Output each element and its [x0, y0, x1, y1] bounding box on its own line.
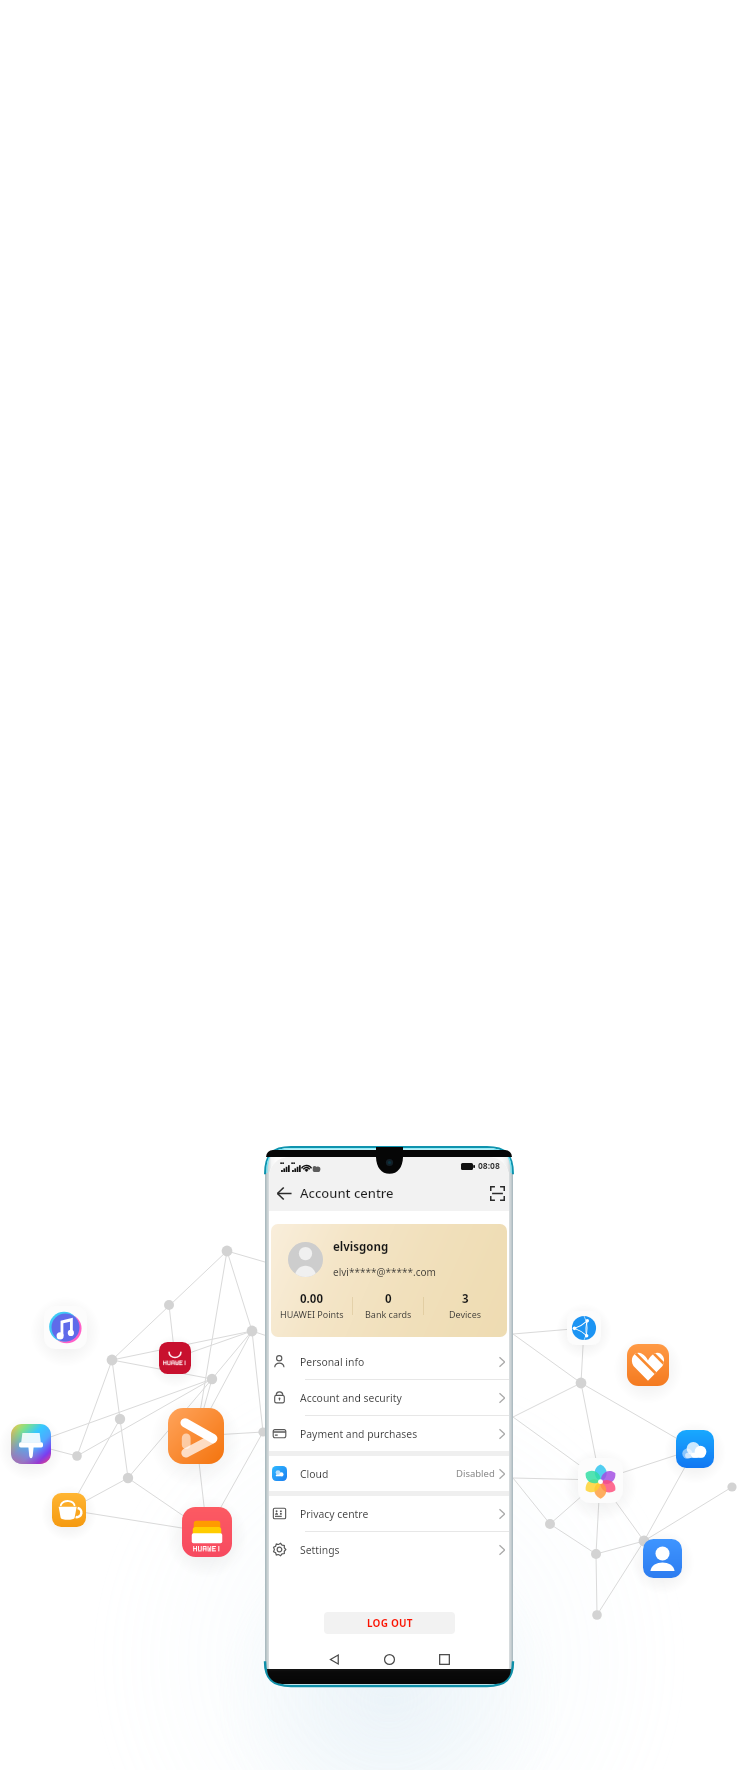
staticText: Bank cards: [365, 1308, 412, 1320]
other: HiCare: [52, 1493, 86, 1527]
button[interactable]: Browser: [567, 1311, 601, 1345]
other: Browser: [567, 1311, 601, 1345]
button[interactable]: 0: [353, 1291, 423, 1320]
button[interactable]: elvisgong: [271, 1224, 507, 1337]
other: Music: [44, 1306, 87, 1349]
staticText: Account centre: [300, 1184, 394, 1202]
button[interactable]: Cloud: [676, 1430, 714, 1468]
staticText: Payment and purchases: [300, 1427, 418, 1441]
staticText: Settings: [300, 1543, 340, 1557]
staticText: Account and security: [300, 1391, 402, 1405]
button[interactable]: Privacy centre: [269, 1496, 509, 1531]
other: Wallet: [182, 1507, 232, 1557]
other: Gallery: [578, 1458, 623, 1503]
staticText: Devices: [449, 1308, 482, 1320]
other: Themes: [11, 1424, 51, 1464]
button[interactable]: 0.00: [271, 1291, 352, 1320]
staticText: 08:08: [478, 1160, 500, 1172]
other: Health: [627, 1344, 669, 1386]
other: Cloud: [676, 1430, 714, 1468]
button[interactable]: Account and security: [269, 1380, 509, 1415]
button[interactable]: Gallery: [578, 1458, 623, 1503]
button[interactable]: HiCare: [52, 1493, 86, 1527]
staticText: elvi*****@*****.com: [333, 1265, 436, 1279]
button[interactable]: Back: [269, 1175, 300, 1211]
button[interactable]: Home: [374, 1648, 404, 1670]
other: Contacts: [643, 1539, 682, 1578]
button[interactable]: Recent apps: [429, 1648, 459, 1670]
staticText: 0.00: [300, 1291, 323, 1307]
button[interactable]: 3: [424, 1291, 507, 1320]
staticText: HUAWEI Points: [280, 1308, 344, 1320]
other: AppGallery: [159, 1342, 191, 1374]
button[interactable]: Themes: [11, 1424, 51, 1464]
staticText: elvisgong: [333, 1239, 389, 1255]
staticText: Cloud: [300, 1467, 329, 1481]
button[interactable]: Settings: [269, 1532, 509, 1567]
button[interactable]: Health: [627, 1344, 669, 1386]
button[interactable]: Wallet: [182, 1507, 232, 1557]
button[interactable]: Personal info: [269, 1344, 509, 1379]
staticText: Disabled: [456, 1467, 495, 1480]
staticText: Privacy centre: [300, 1507, 369, 1521]
staticText: LOG OUT: [367, 1616, 413, 1630]
button[interactable]: Payment and purchases: [269, 1416, 509, 1451]
button[interactable]: Cloud: [269, 1456, 509, 1491]
button[interactable]: Music: [44, 1306, 87, 1349]
button[interactable]: Back: [319, 1648, 349, 1670]
staticText: Personal info: [300, 1355, 365, 1369]
button[interactable]: HUAWEI Video: [168, 1408, 224, 1464]
button[interactable]: Scan code: [486, 1175, 509, 1211]
other: HUAWEI Video: [168, 1408, 224, 1464]
button[interactable]: AppGallery: [159, 1342, 191, 1374]
button[interactable]: LOG OUT: [324, 1612, 455, 1634]
staticText: 0: [385, 1291, 392, 1307]
button[interactable]: Contacts: [643, 1539, 682, 1578]
staticText: 3: [462, 1291, 469, 1307]
